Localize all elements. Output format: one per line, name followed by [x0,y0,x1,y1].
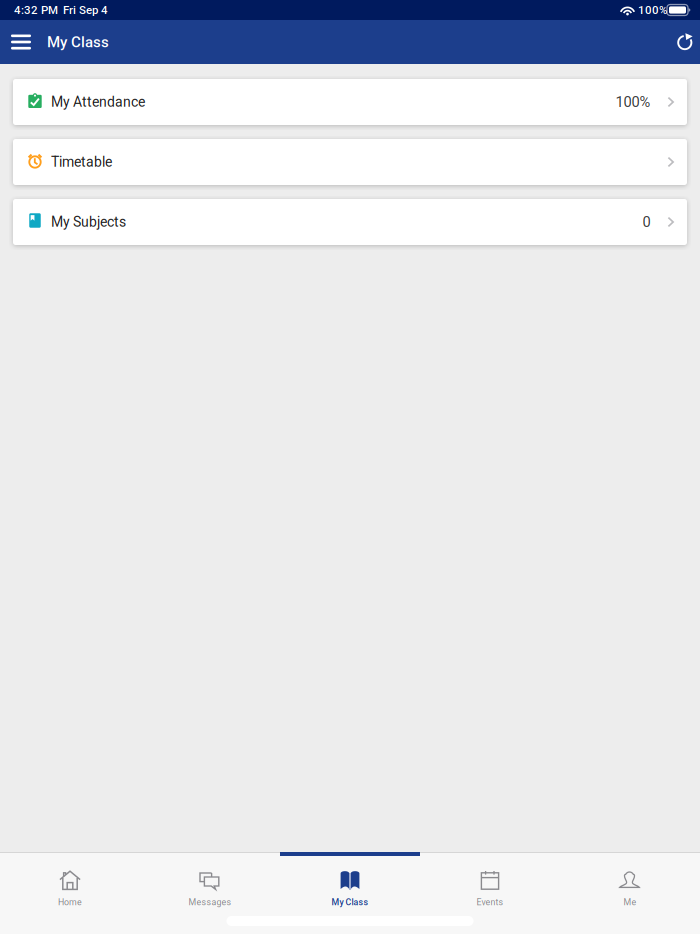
staticText: 4:32 PM [14,3,58,17]
staticText: Me [623,897,636,907]
button[interactable]: Menu [0,20,42,64]
staticText: 100% [638,3,667,17]
staticText: Messages [188,897,231,907]
button[interactable]: Events [420,857,560,909]
button[interactable]: My Class [280,857,420,909]
staticText: My Subjects [51,214,126,230]
staticText: 0 [642,213,650,231]
staticText: Home [58,897,82,907]
button[interactable]: Timetable [13,139,687,185]
button[interactable]: Me [560,857,700,909]
button[interactable]: Messages [140,857,280,909]
staticText: Timetable [51,154,112,170]
staticText: 100% [615,93,650,111]
staticText: My Class [47,33,109,51]
button[interactable]: Home [0,857,140,909]
button[interactable]: My Attendance [13,79,687,125]
staticText: My Attendance [51,94,145,110]
button[interactable]: Refresh [670,20,700,64]
staticText: Events [476,897,503,907]
button[interactable]: My Subjects [13,199,687,245]
staticText: Fri Sep 4 [63,3,108,17]
staticText: My Class [331,897,368,907]
